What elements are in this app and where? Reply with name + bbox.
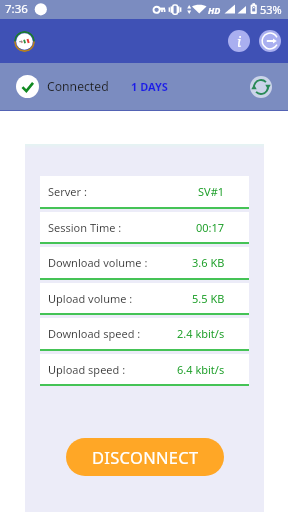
staticText: DISCONNECT [92, 446, 199, 468]
button[interactable]: DISCONNECT [66, 438, 224, 476]
staticText: 53% [260, 2, 282, 17]
staticText: Server : [48, 184, 87, 199]
staticText: 6.4 kbit/s [177, 362, 225, 377]
staticText: i [237, 32, 242, 51]
button[interactable]: Upload speed : [40, 354, 249, 385]
staticText: HD [208, 4, 221, 16]
button[interactable]: Upload volume : [40, 283, 249, 314]
staticText: SV#1 [198, 184, 225, 199]
button[interactable]: Info [228, 30, 250, 52]
staticText: 1 DAYS [131, 79, 168, 94]
button[interactable]: Server : [40, 176, 249, 207]
staticText: 7:36 [5, 1, 28, 17]
staticText: Session Time : [48, 220, 122, 235]
staticText: 2.4 kbit/s [177, 326, 225, 341]
button[interactable]: Download volume : [40, 247, 249, 278]
staticText: 3.6 KB [192, 255, 225, 270]
staticText: Download speed : [48, 326, 141, 341]
button[interactable]: App logo [14, 31, 35, 52]
staticText: Upload volume : [48, 291, 133, 306]
staticText: 5.5 KB [192, 291, 225, 306]
button[interactable]: Download speed : [40, 318, 249, 349]
staticText: Download volume : [48, 255, 148, 270]
staticText: Upload speed : [48, 362, 126, 377]
button[interactable]: Session Time : [40, 212, 249, 243]
button[interactable]: Logout [259, 30, 281, 52]
staticText: Connected [47, 78, 109, 95]
staticText: 00:17 [196, 220, 225, 235]
button[interactable]: Refresh [250, 76, 272, 98]
